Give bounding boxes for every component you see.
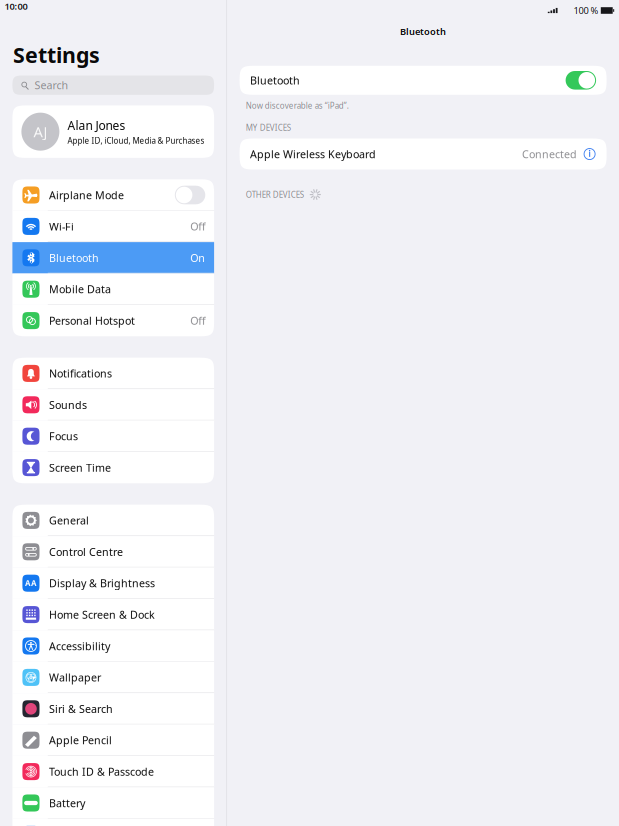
staticText: General [49,513,89,527]
button[interactable]: Focus [12,420,214,452]
button[interactable]: Screen Time [12,452,214,483]
staticText: Mobile Data [49,282,111,296]
staticText: Apple ID, iCloud, Media & Purchases [67,135,204,146]
staticText: Battery [49,796,85,810]
staticText: Apple Wireless Keyboard [250,147,376,161]
button[interactable]: AA [12,567,214,599]
button[interactable]: Personal Hotspot [12,305,214,336]
button[interactable]: Touch ID & Passcode [12,756,214,787]
button[interactable]: Airplane Mode [12,179,214,211]
button[interactable]: Apple Pencil [12,724,214,756]
staticText: Home Screen & Dock [49,607,155,622]
staticText: Personal Hotspot [49,313,135,328]
staticText: Sounds [49,398,87,412]
staticText: Settings [13,41,100,69]
staticText: Alan Jones [67,117,125,133]
staticText: Now discoverable as “iPad”. [246,100,349,111]
staticText: Off [190,219,205,233]
button[interactable]: Bluetooth [12,242,214,273]
button[interactable]: Siri & Search [12,693,214,724]
staticText: Touch ID & Passcode [49,764,154,779]
button[interactable]: Battery [12,787,214,819]
staticText: AJ [33,122,47,141]
staticText: Accessibility [49,639,110,653]
staticText: Bluetooth [250,73,300,87]
staticText: Connected [522,147,577,161]
button[interactable]: Notifications [12,358,214,389]
button[interactable]: Wallpaper [12,662,214,693]
staticText: 100 % [573,4,598,17]
staticText: Airplane Mode [49,188,124,202]
button[interactable]: Mobile Data [12,273,214,305]
staticText: Screen Time [49,460,111,475]
staticText: Siri & Search [49,702,113,716]
staticText: Wi-Fi [49,219,74,233]
button[interactable]: Accessibility [12,630,214,662]
button[interactable]: General [12,505,214,536]
button[interactable]: AJ [12,105,214,158]
button[interactable]: Control Centre [12,536,214,567]
staticText: Bluetooth [400,25,446,38]
button[interactable]: Apple Wireless Keyboard [240,138,607,169]
button[interactable]: Home Screen & Dock [12,599,214,630]
button[interactable]: Sounds [12,389,214,420]
staticText: Notifications [49,366,112,380]
staticText: Display & Brightness [49,576,155,590]
staticText: 10:00 [4,0,27,12]
staticText: MY DEVICES [246,122,291,133]
staticText: Focus [49,429,78,443]
staticText: Bluetooth [49,251,99,265]
button[interactable]: Wi-Fi [12,211,214,242]
staticText: On [190,251,205,265]
staticText: Wallpaper [49,670,101,684]
staticText: Off [190,313,205,328]
staticText: Apple Pencil [49,733,112,747]
staticText: OTHER DEVICES [246,189,304,200]
staticText: Search [34,78,68,92]
staticText: Control Centre [49,545,123,559]
staticText: AA [25,578,37,588]
